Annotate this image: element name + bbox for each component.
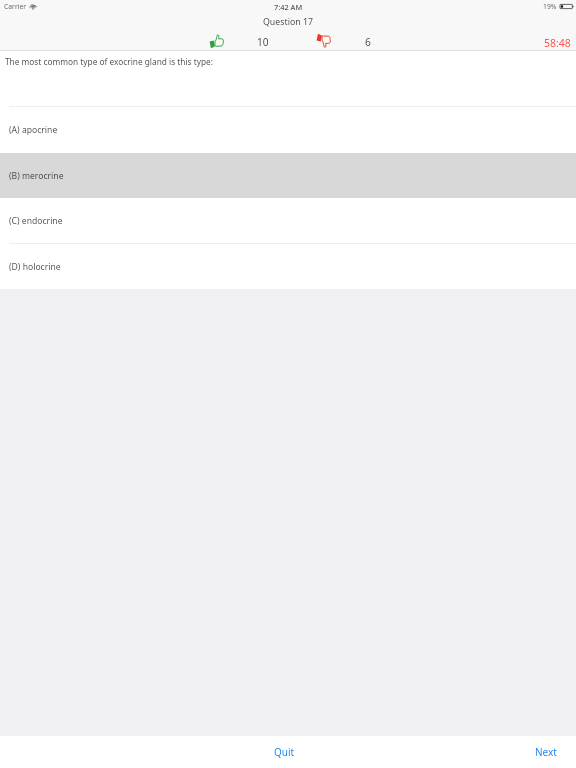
button[interactable]: (A) apocrine — [0, 107, 576, 153]
staticText: 19% — [543, 2, 557, 11]
staticText: Next — [535, 745, 557, 759]
staticText: (D) holocrine — [9, 261, 61, 273]
staticText: The most common type of exocrine gland i… — [5, 56, 213, 67]
staticText: 10 — [257, 35, 269, 49]
button[interactable]: (B) merocrine — [0, 153, 576, 198]
button[interactable]: Next — [519, 738, 576, 766]
staticText: (C) endocrine — [9, 215, 63, 227]
button[interactable]: (C) endocrine — [0, 198, 576, 244]
staticText: (B) merocrine — [9, 170, 64, 182]
button[interactable]: Quit — [258, 738, 311, 766]
staticText: Question 17 — [263, 16, 314, 28]
staticText: 6 — [365, 35, 371, 49]
staticText: Quit — [274, 745, 295, 759]
staticText: (A) apocrine — [9, 124, 58, 136]
staticText: Carrier — [4, 2, 27, 11]
button[interactable]: Wrong answers — [316, 33, 331, 48]
button[interactable]: (D) holocrine — [0, 244, 576, 289]
button[interactable]: Correct answers — [209, 34, 224, 49]
staticText: 58:48 — [544, 36, 571, 50]
staticText: 7:42 AM — [274, 2, 303, 12]
